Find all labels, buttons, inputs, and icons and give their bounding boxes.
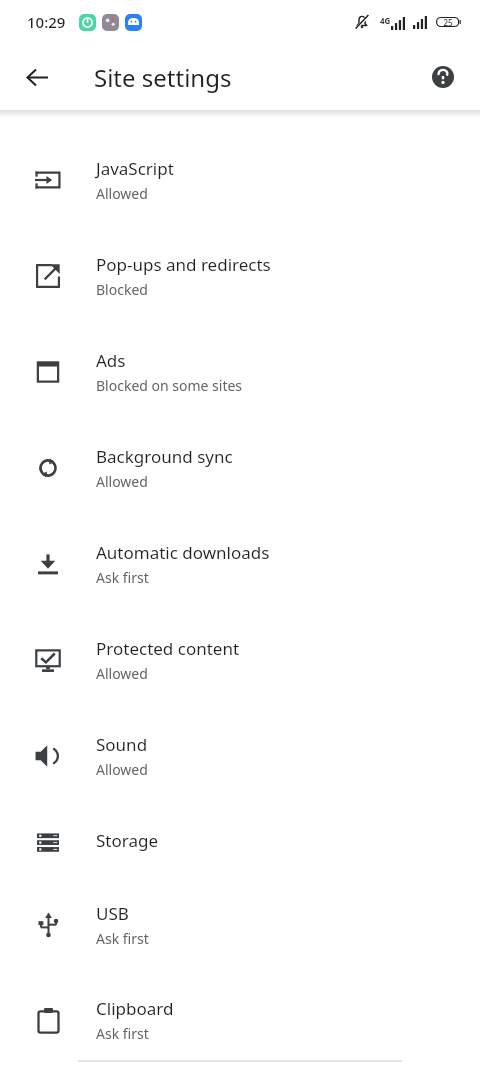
staticText: 10:29 [27,12,66,32]
staticText: Blocked on some sites [96,376,243,395]
staticText: Protected content [96,637,240,660]
staticText: Storage [96,829,159,852]
button[interactable]: Pop-ups and redirects [0,228,480,324]
staticText: Pop-ups and redirects [96,253,271,276]
button[interactable]: USB [0,877,480,973]
staticText: Site settings [94,61,232,94]
button[interactable]: Ads [0,324,480,420]
staticText: Ask first [96,1024,149,1043]
staticText: Ask first [96,929,149,948]
staticText: Allowed [96,472,148,491]
button[interactable]: Storage [0,804,480,877]
staticText: Automatic downloads [96,541,270,564]
staticText: Allowed [96,184,148,203]
staticText: JavaScript [96,157,174,180]
button[interactable]: Protected content [0,612,480,708]
staticText: Allowed [96,664,148,683]
staticText: 4G [380,15,391,26]
staticText: Blocked [96,280,148,299]
staticText: Ads [96,349,126,372]
staticText: Allowed [96,760,148,779]
button[interactable]: Clipboard [0,973,480,1067]
staticText: Ask first [96,568,149,587]
staticText: 25 [443,17,453,28]
button[interactable]: Automatic downloads [0,516,480,612]
button[interactable]: Sound [0,708,480,804]
button[interactable]: JavaScript [0,132,480,228]
button[interactable]: Background sync [0,420,480,516]
staticText: USB [96,902,129,925]
button[interactable]: Navigate up [13,53,61,101]
staticText: Background sync [96,445,233,468]
button[interactable]: Help and feedback [419,53,467,101]
staticText: Clipboard [96,997,174,1020]
staticText: Sound [96,733,148,756]
